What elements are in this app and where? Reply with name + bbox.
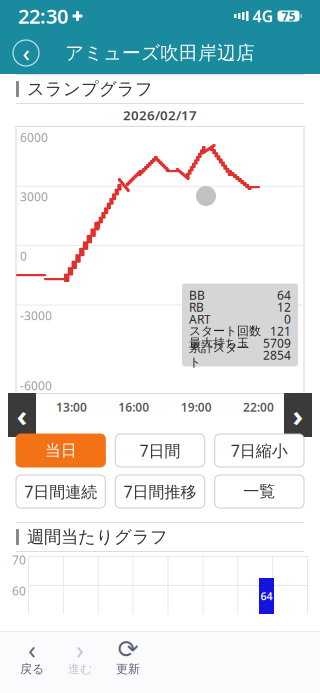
staticText: 70: [12, 552, 26, 568]
staticText: ⟳: [117, 635, 138, 664]
staticText: ‹: [22, 38, 29, 68]
staticText: -6000: [20, 378, 52, 394]
staticText: 0: [20, 248, 27, 264]
staticText: 64: [277, 287, 291, 303]
staticText: -3000: [20, 308, 52, 323]
staticText: 6000: [20, 129, 48, 145]
staticText: 4G: [252, 5, 273, 27]
staticText: 一覧: [243, 482, 275, 501]
button[interactable]: Forward: [56, 637, 104, 677]
staticText: 当日: [45, 441, 77, 460]
button[interactable]: 7日縮小: [215, 434, 304, 467]
staticText: 最大持ち玉: [189, 336, 249, 350]
staticText: 週間当たりグラフ: [27, 526, 168, 548]
staticText: 7日間連続: [24, 481, 97, 502]
staticText: ‹: [28, 632, 36, 666]
button[interactable]: 7日間: [115, 434, 205, 467]
staticText: スタート回数: [189, 324, 261, 338]
staticText: ›: [292, 395, 303, 434]
staticText: 13:00: [56, 399, 87, 415]
staticText: 7日間: [139, 440, 180, 461]
staticText: 5709: [263, 335, 291, 351]
button[interactable]: Back: [6, 33, 46, 73]
staticText: 累計スタート: [189, 340, 249, 370]
staticText: 22:30: [18, 3, 68, 29]
staticText: 戻る: [20, 662, 44, 676]
staticText: 7日縮小: [231, 440, 288, 461]
staticText: スランプグラフ: [27, 78, 153, 100]
staticText: 進む: [68, 662, 92, 676]
staticText: 3000: [20, 189, 48, 205]
staticText: ›: [76, 632, 84, 666]
staticText: ‹: [16, 395, 27, 434]
staticText: 0: [284, 311, 291, 327]
staticText: RB: [189, 299, 204, 315]
button[interactable]: 7日間連続: [16, 475, 105, 508]
staticText: 121: [270, 323, 291, 339]
staticText: 19:00: [181, 399, 212, 415]
staticText: BB: [189, 287, 205, 303]
staticText: 60: [12, 583, 26, 599]
staticText: 12: [277, 299, 291, 315]
button[interactable]: Next day: [284, 393, 312, 437]
staticText: 2854: [263, 347, 291, 363]
staticText: 更新: [116, 662, 140, 676]
button[interactable]: 一覧: [215, 475, 304, 508]
button[interactable]: Back: [8, 637, 56, 677]
staticText: ART: [189, 311, 211, 327]
staticText: アミューズ吹田岸辺店: [65, 41, 255, 64]
staticText: 2026/02/17: [123, 106, 197, 124]
staticText: 7日間推移: [123, 481, 196, 502]
staticText: 16:00: [118, 399, 149, 415]
button[interactable]: 当日: [16, 434, 105, 467]
button[interactable]: Reload: [104, 637, 152, 677]
button[interactable]: 7日間推移: [115, 475, 205, 508]
staticText: 64: [260, 589, 272, 603]
staticText: 75: [281, 8, 295, 24]
button[interactable]: Previous day: [8, 393, 36, 437]
staticText: 22:00: [243, 399, 274, 415]
